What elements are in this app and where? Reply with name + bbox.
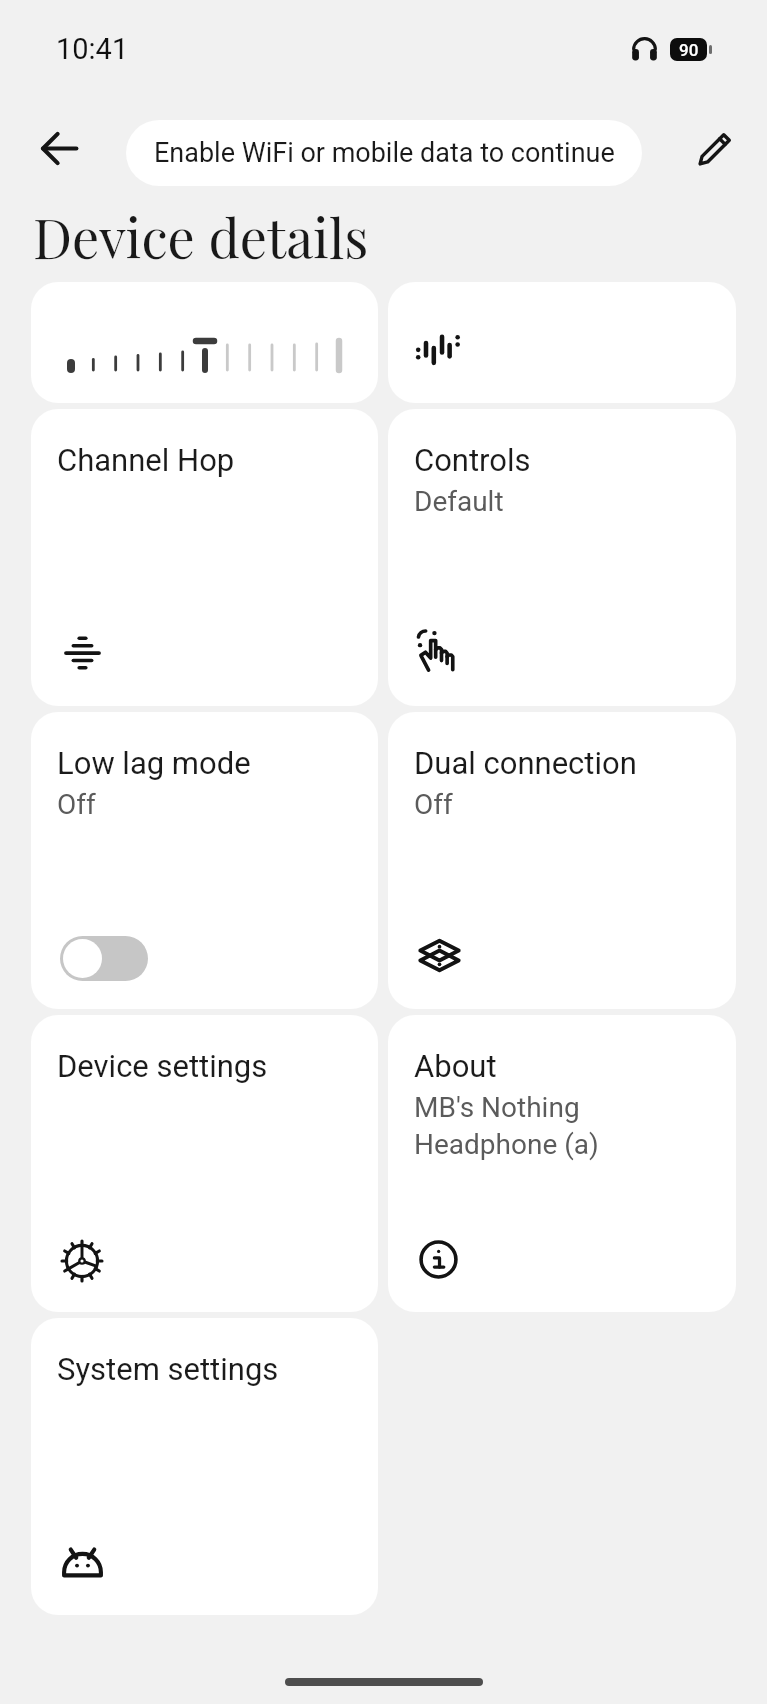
- staticText: Off: [414, 788, 453, 821]
- button[interactable]: [388, 282, 736, 403]
- button[interactable]: About: [388, 1015, 736, 1312]
- staticText: Channel Hop: [57, 442, 235, 478]
- button[interactable]: Channel Hop: [59, 630, 106, 677]
- button[interactable]: System settings: [59, 1537, 106, 1584]
- button[interactable]: About: [418, 1239, 459, 1280]
- button[interactable]: [31, 282, 378, 403]
- button[interactable]: Back: [21, 110, 98, 187]
- button[interactable]: Enable WiFi or mobile data to continue: [126, 120, 642, 186]
- staticText: System settings: [57, 1351, 279, 1387]
- button[interactable]: Dual connection: [388, 712, 736, 1009]
- button[interactable]: Controls: [414, 626, 464, 676]
- button[interactable]: Dual connection: [416, 932, 463, 979]
- button[interactable]: Channel Hop: [31, 409, 378, 706]
- staticText: About: [414, 1048, 497, 1084]
- button[interactable]: Low lag mode toggle: [60, 936, 148, 981]
- button[interactable]: Controls: [388, 409, 736, 706]
- staticText: Device settings: [57, 1048, 268, 1084]
- staticText: MB's Nothing Headphone (a): [414, 1091, 599, 1161]
- button[interactable]: System settings: [31, 1318, 378, 1615]
- button[interactable]: Device settings: [60, 1239, 104, 1283]
- staticText: Default: [414, 485, 504, 518]
- staticText: Controls: [414, 442, 531, 478]
- staticText: Device details: [33, 201, 369, 273]
- button[interactable]: Edit: [677, 110, 754, 187]
- staticText: Off: [57, 788, 96, 821]
- staticText: 10:41: [56, 32, 129, 66]
- staticText: 90: [679, 40, 699, 60]
- staticText: Dual connection: [414, 745, 637, 781]
- button[interactable]: Low lag mode: [31, 712, 378, 1009]
- staticText: Low lag mode: [57, 745, 251, 781]
- staticText: Enable WiFi or mobile data to continue: [154, 137, 615, 169]
- button[interactable]: Device settings: [31, 1015, 378, 1312]
